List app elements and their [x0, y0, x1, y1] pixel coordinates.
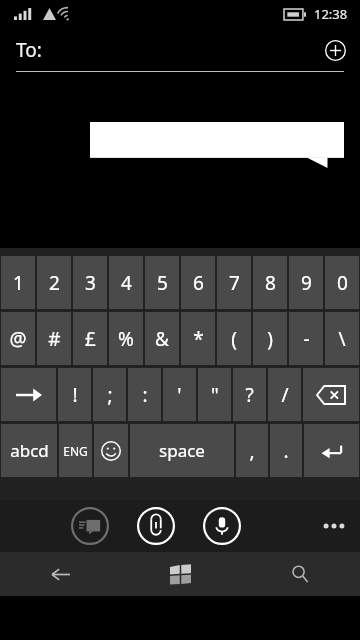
- staticText: &: [155, 326, 169, 352]
- button[interactable]: *: [181, 312, 215, 365]
- button[interactable]: ,: [236, 424, 268, 477]
- button[interactable]: (: [217, 312, 251, 365]
- button[interactable]: 5: [145, 256, 179, 309]
- button[interactable]: -: [289, 312, 323, 365]
- button[interactable]: %: [109, 312, 143, 365]
- button[interactable]: ?: [233, 368, 266, 421]
- button[interactable]: 1: [1, 256, 35, 309]
- button[interactable]: 9: [289, 256, 323, 309]
- button[interactable]: Add recipient: [320, 35, 350, 65]
- staticText: ?: [245, 382, 254, 408]
- button[interactable]: Voice message: [202, 506, 242, 546]
- button[interactable]: !: [58, 368, 91, 421]
- staticText: To:: [16, 37, 42, 63]
- button[interactable]: abcd: [1, 424, 57, 477]
- button[interactable]: /: [268, 368, 301, 421]
- staticText: £: [85, 326, 96, 352]
- staticText: 6: [193, 270, 204, 296]
- staticText: space: [159, 439, 205, 462]
- button[interactable]: 2: [37, 256, 71, 309]
- staticText: ': [177, 382, 182, 408]
- staticText: ): [267, 326, 273, 352]
- staticText: 7: [229, 270, 240, 296]
- button[interactable]: @: [1, 312, 35, 365]
- staticText: *: [193, 326, 204, 352]
- staticText: ENG: [63, 443, 88, 459]
- button[interactable]: :: [128, 368, 161, 421]
- staticText: ,: [249, 438, 255, 464]
- button[interactable]: ': [163, 368, 196, 421]
- button[interactable]: ;: [93, 368, 126, 421]
- staticText: :: [142, 382, 148, 408]
- button[interactable]: .: [270, 424, 302, 477]
- staticText: .: [283, 438, 289, 464]
- staticText: abcd: [10, 439, 49, 462]
- staticText: !: [72, 382, 78, 408]
- staticText: (: [231, 326, 237, 352]
- staticText: 0: [337, 270, 348, 296]
- staticText: 3: [85, 270, 96, 296]
- button[interactable]: 6: [181, 256, 215, 309]
- button[interactable]: Emoji: [94, 424, 128, 477]
- button[interactable]: Backspace: [303, 368, 359, 421]
- staticText: -: [303, 326, 310, 352]
- button[interactable]: [90, 122, 344, 168]
- staticText: 4: [121, 270, 132, 296]
- staticText: %: [118, 326, 134, 352]
- staticText: 1: [13, 270, 24, 296]
- staticText: /: [281, 382, 289, 408]
- button[interactable]: space: [130, 424, 234, 477]
- button[interactable]: &: [145, 312, 179, 365]
- button[interactable]: 3: [73, 256, 107, 309]
- button[interactable]: ): [253, 312, 287, 365]
- button[interactable]: 8: [253, 256, 287, 309]
- button[interactable]: ENG: [59, 424, 92, 477]
- staticText: \: [338, 326, 346, 352]
- staticText: 5: [157, 270, 168, 296]
- button[interactable]: 0: [325, 256, 359, 309]
- button[interactable]: 4: [109, 256, 143, 309]
- staticText: ": [211, 382, 219, 408]
- button[interactable]: Text message: [70, 506, 110, 546]
- button[interactable]: £: [73, 312, 107, 365]
- button[interactable]: Enter: [304, 424, 359, 477]
- staticText: 9: [301, 270, 312, 296]
- button[interactable]: \: [325, 312, 359, 365]
- staticText: 2: [49, 270, 60, 296]
- button[interactable]: Tab: [1, 368, 56, 421]
- button[interactable]: More options: [316, 508, 352, 544]
- staticText: 8: [265, 270, 276, 296]
- staticText: @: [9, 326, 27, 352]
- staticText: #: [48, 326, 61, 352]
- staticText: ;: [107, 382, 113, 408]
- button[interactable]: Back: [0, 552, 120, 596]
- button[interactable]: #: [37, 312, 71, 365]
- button[interactable]: Search: [240, 552, 360, 596]
- button[interactable]: ": [198, 368, 231, 421]
- button[interactable]: Start: [120, 552, 240, 596]
- button[interactable]: Attach: [136, 506, 176, 546]
- staticText: 12:38: [314, 5, 348, 23]
- button[interactable]: 7: [217, 256, 251, 309]
